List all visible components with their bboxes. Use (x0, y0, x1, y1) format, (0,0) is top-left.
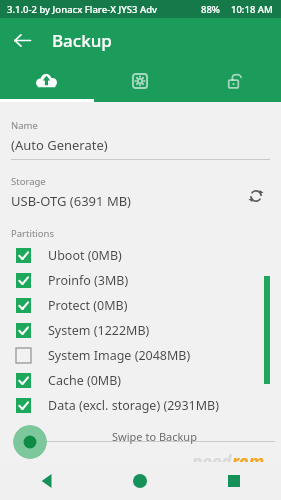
staticText: Name (11, 119, 38, 132)
staticText: Swipe to Backup (112, 429, 197, 444)
button[interactable]: Uboot (0MB) (0, 243, 281, 268)
staticText: Uboot (0MB) (48, 247, 122, 264)
button[interactable]: Swipe to Backup (13, 425, 47, 459)
button[interactable]: System Image (2048MB) (0, 343, 281, 368)
button[interactable]: Back (5, 23, 39, 57)
staticText: Proinfo (3MB) (48, 272, 129, 289)
staticText: System (1222MB) (48, 322, 150, 339)
button[interactable]: Unlock tab (187, 62, 281, 99)
button[interactable]: Refresh storage (242, 182, 270, 210)
button[interactable]: Data (excl. storage) (2931MB) (0, 393, 281, 418)
staticText: Data (excl. storage) (2931MB) (48, 397, 219, 414)
staticText: 10:18 AM (231, 3, 273, 16)
staticText: Partitions (11, 227, 54, 240)
staticText: 88% (201, 3, 220, 16)
staticText: Cache (0MB) (48, 372, 122, 389)
button[interactable]: System (1222MB) (0, 318, 281, 343)
staticText: (Auto Generate) (11, 136, 108, 154)
staticText: need (192, 450, 232, 473)
staticText: USB-OTG (6391 MB) (11, 192, 132, 210)
button[interactable]: Protect (0MB) (0, 293, 281, 318)
button[interactable]: Backup tab (0, 62, 93, 99)
staticText: System Image (2048MB) (48, 347, 191, 364)
button[interactable]: Recents (187, 462, 281, 500)
staticText: 3.1.0-2 by Jonacx Flare-X JYS3 Adv (7, 3, 158, 16)
staticText: Protect (0MB) (48, 297, 128, 314)
button[interactable]: Name (11, 119, 270, 160)
button[interactable]: Storage (11, 175, 242, 210)
button[interactable]: Back (0, 462, 93, 500)
staticText: Backup (52, 29, 112, 52)
button[interactable]: Cache (0MB) (0, 368, 281, 393)
button[interactable]: Proinfo (3MB) (0, 268, 281, 293)
staticText: rom (232, 450, 265, 473)
button[interactable]: Home (93, 462, 187, 500)
button[interactable]: Settings tab (93, 62, 187, 99)
staticText: Storage (11, 175, 46, 188)
